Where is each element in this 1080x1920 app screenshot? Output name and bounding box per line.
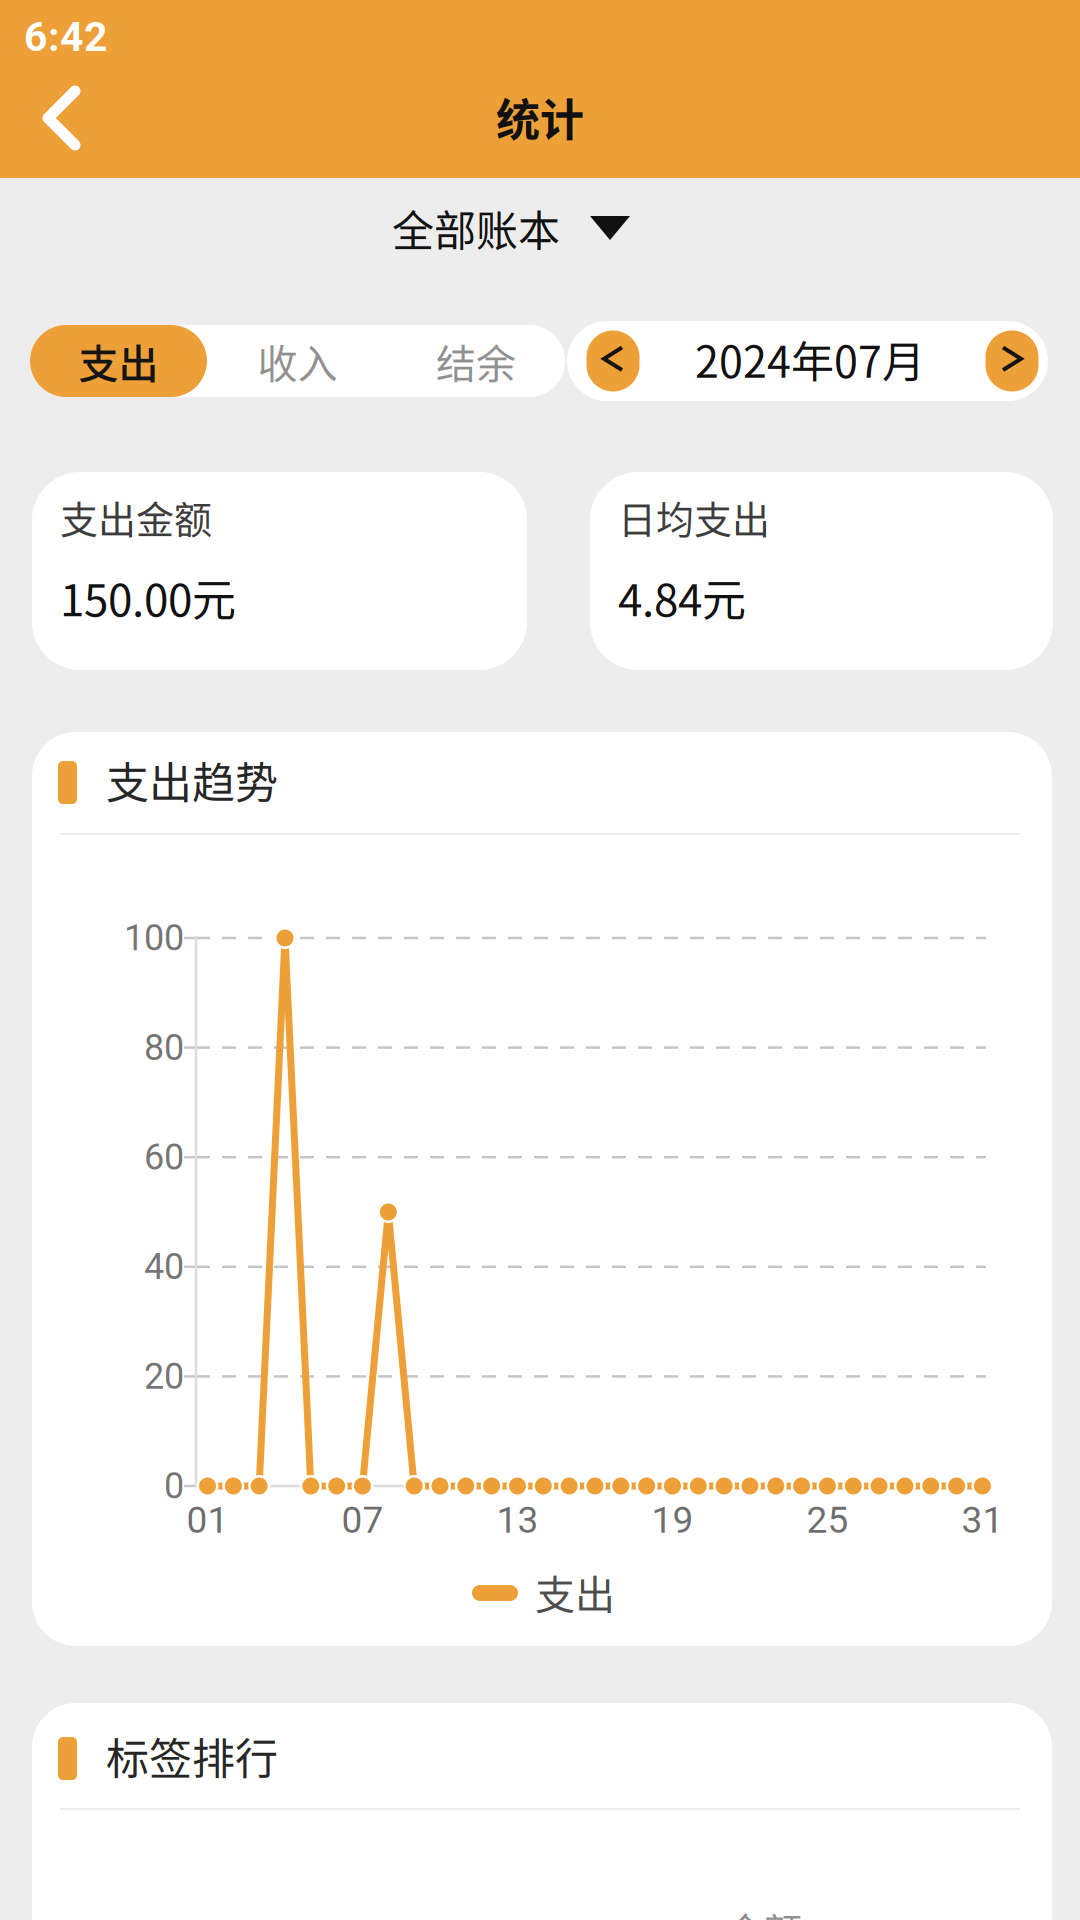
staticText: 100 xyxy=(124,917,184,959)
staticText: 结余 xyxy=(436,332,516,390)
staticText: 80 xyxy=(144,1026,184,1069)
staticText: 07 xyxy=(341,1498,383,1542)
button[interactable] xyxy=(586,330,639,391)
staticText: 60 xyxy=(144,1136,184,1178)
staticText: 支出金额 xyxy=(60,489,212,544)
button[interactable] xyxy=(17,74,105,162)
staticText: 支出趋势 xyxy=(106,749,278,811)
staticText: 统计 xyxy=(496,85,584,149)
staticText: 支出 xyxy=(78,332,158,390)
button[interactable]: 结余 xyxy=(387,325,565,397)
staticText: 2024年07月 xyxy=(695,328,925,390)
staticText: 支出 xyxy=(535,1563,615,1621)
staticText: 40 xyxy=(144,1246,184,1288)
button[interactable]: 支出 xyxy=(30,325,207,397)
button[interactable]: 收入 xyxy=(208,325,386,397)
staticText: 13 xyxy=(496,1498,538,1542)
button[interactable]: 2024年07月 xyxy=(695,328,925,390)
button[interactable] xyxy=(985,330,1038,391)
staticText: 6:42 xyxy=(24,13,108,61)
staticText: 25 xyxy=(806,1498,848,1542)
staticText: 150.00元 xyxy=(60,565,236,629)
staticText: 19 xyxy=(651,1498,693,1542)
staticText: 标签排行 xyxy=(106,1725,278,1787)
staticText: 0 xyxy=(164,1465,184,1507)
button[interactable]: 全部账本 xyxy=(392,198,630,258)
staticText: 收入 xyxy=(257,332,337,390)
staticText: 4.84元 xyxy=(618,565,746,629)
staticText: 日均支出 xyxy=(618,489,770,544)
staticText: 全部账本 xyxy=(392,198,560,258)
staticText: 01 xyxy=(186,1498,228,1542)
staticText: 金额 xyxy=(726,1901,802,1920)
staticText: 31 xyxy=(961,1498,1003,1542)
staticText: 20 xyxy=(144,1355,184,1397)
